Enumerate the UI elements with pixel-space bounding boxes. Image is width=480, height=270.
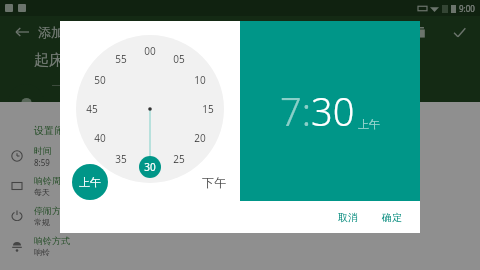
staticText: 常规 bbox=[34, 217, 50, 227]
button[interactable]: 上午 bbox=[72, 164, 108, 200]
button[interactable]: 下午 bbox=[202, 175, 226, 190]
staticText: 起床 bbox=[34, 51, 64, 70]
staticText: 45 bbox=[86, 102, 98, 116]
button[interactable]: Alarm bbox=[8, 84, 44, 120]
button[interactable] bbox=[76, 35, 224, 183]
button[interactable]: Done bbox=[448, 21, 470, 43]
button[interactable]: 时间 bbox=[0, 141, 480, 171]
staticText: 下午 bbox=[202, 175, 226, 190]
button[interactable]: 上午 bbox=[358, 117, 380, 131]
staticText: 停闹方式 bbox=[34, 205, 70, 216]
button[interactable]: 响铃周期 bbox=[0, 171, 480, 201]
button[interactable]: 7: bbox=[280, 85, 311, 137]
staticText: 确定 bbox=[382, 211, 402, 224]
staticText: 上午 bbox=[79, 175, 101, 189]
staticText: 8:59 bbox=[34, 157, 50, 168]
staticText: 9:00 bbox=[459, 3, 475, 14]
staticText: 添加闹钟 bbox=[38, 24, 90, 40]
staticText: 55 bbox=[115, 52, 127, 66]
staticText: 响铃周期 bbox=[34, 175, 70, 186]
staticText: 20 bbox=[194, 131, 206, 145]
staticText: 15 bbox=[202, 102, 214, 116]
staticText: 50 bbox=[94, 73, 106, 87]
staticText: 响铃 bbox=[34, 247, 50, 257]
staticText: 取消 bbox=[338, 211, 358, 224]
staticText: 时间 bbox=[34, 145, 52, 156]
staticText: 40 bbox=[94, 131, 106, 145]
button[interactable]: Delete bbox=[410, 21, 432, 43]
staticText: 35 bbox=[115, 152, 127, 166]
staticText: 00 bbox=[144, 44, 156, 58]
button[interactable]: Back bbox=[10, 20, 34, 44]
staticText: 响铃方式 bbox=[34, 235, 70, 246]
staticText: 25 bbox=[173, 152, 185, 166]
staticText: 设置闹钟 bbox=[34, 124, 74, 137]
staticText: 30 bbox=[144, 160, 156, 174]
button[interactable]: 停闹方式 bbox=[0, 201, 480, 231]
button[interactable]: 30 bbox=[311, 85, 355, 137]
button[interactable]: 响铃方式 bbox=[0, 231, 480, 261]
button[interactable]: 取消 bbox=[330, 207, 366, 228]
staticText: 10 bbox=[194, 73, 206, 87]
staticText: 每天 bbox=[34, 187, 50, 197]
staticText: 05 bbox=[173, 52, 185, 66]
button[interactable]: 确定 bbox=[374, 207, 410, 228]
